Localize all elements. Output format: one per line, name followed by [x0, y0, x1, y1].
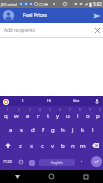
button[interactable]: h [58, 122, 68, 138]
staticText: I [22, 98, 24, 104]
staticText: 2 [18, 108, 20, 112]
button[interactable]: b [58, 138, 68, 153]
button[interactable]: 8 [73, 106, 83, 122]
staticText: c [41, 142, 44, 150]
staticText: z [19, 142, 22, 150]
staticText: 9 [89, 108, 91, 112]
staticText: f [42, 126, 45, 134]
staticText: p [96, 112, 100, 120]
button[interactable]: 1 [0, 106, 11, 122]
button[interactable]: l [88, 122, 98, 138]
button[interactable]: English [39, 159, 75, 166]
button[interactable]: 5 [43, 106, 53, 122]
button[interactable]: 7 [63, 106, 73, 122]
button[interactable]: c [37, 138, 48, 153]
staticText: 7 [69, 108, 71, 112]
button[interactable]: Send [90, 9, 103, 22]
staticText: v [51, 142, 55, 150]
staticText: ?123 [3, 159, 13, 165]
button[interactable]: n [68, 138, 78, 153]
button[interactable]: Enter [90, 155, 103, 168]
button[interactable]: f [38, 122, 48, 138]
staticText: b [61, 142, 65, 150]
staticText: 4 [39, 108, 41, 112]
button[interactable]: d [27, 122, 38, 138]
button[interactable]: Home [45, 170, 58, 183]
staticText: 3 [29, 108, 31, 112]
button[interactable]: Period [77, 153, 85, 170]
staticText: l [92, 126, 94, 134]
button[interactable]: the [63, 96, 90, 106]
button[interactable]: Hi [36, 96, 63, 106]
staticText: 6 [59, 108, 61, 112]
staticText: 1 [7, 108, 9, 112]
staticText: y [56, 112, 60, 120]
staticText: m [80, 142, 86, 150]
button[interactable]: Recents [79, 170, 92, 183]
button[interactable]: a [5, 122, 16, 138]
staticText: Fuel Prices [23, 12, 48, 19]
staticText: k [81, 126, 85, 134]
staticText: a [9, 126, 13, 134]
staticText: 5 [49, 108, 51, 112]
button[interactable]: Close [91, 24, 103, 36]
button[interactable]: Stickers [29, 160, 35, 166]
button[interactable]: Contact avatar [3, 10, 14, 21]
staticText: Add recipients [4, 27, 35, 33]
staticText: q [4, 112, 8, 120]
button[interactable]: 9 [83, 106, 93, 122]
button[interactable]: 4 [33, 106, 43, 122]
staticText: English [51, 160, 63, 165]
staticText: Hi [47, 98, 52, 104]
staticText: i [77, 112, 79, 120]
staticText: g [51, 126, 55, 134]
staticText: o [86, 112, 90, 120]
staticText: r [37, 112, 40, 120]
button[interactable]: I [9, 96, 36, 106]
staticText: h [61, 126, 65, 134]
button[interactable]: 0 [93, 106, 103, 122]
button[interactable]: z [15, 138, 26, 153]
button[interactable]: m [78, 138, 88, 153]
button[interactable]: 2 [11, 106, 22, 122]
button[interactable]: Backspace [88, 138, 103, 153]
button[interactable]: Emoji [16, 153, 25, 170]
button[interactable]: j [68, 122, 78, 138]
staticText: 0 [99, 108, 101, 112]
staticText: 8 [79, 108, 81, 112]
staticText: w [14, 112, 19, 120]
staticText: e [26, 112, 30, 120]
button[interactable]: v [48, 138, 58, 153]
button[interactable]: 6 [53, 106, 63, 122]
button[interactable]: k [78, 122, 88, 138]
button[interactable]: ?123 [0, 153, 15, 170]
button[interactable]: g [48, 122, 58, 138]
staticText: s [20, 126, 23, 134]
staticText: x [30, 142, 34, 150]
staticText: JIO airtel [1, 2, 18, 7]
button[interactable]: x [26, 138, 37, 153]
button[interactable]: Voice input [93, 97, 101, 105]
button[interactable]: Shift [0, 138, 15, 153]
button[interactable]: s [16, 122, 27, 138]
staticText: 5:02 [93, 1, 102, 7]
staticText: the [73, 98, 80, 104]
button[interactable]: Back [11, 170, 24, 183]
button[interactable]: Google [2, 98, 9, 105]
button[interactable]: 3 [22, 106, 33, 122]
staticText: j [72, 126, 74, 134]
staticText: n [71, 142, 75, 150]
staticText: u [66, 112, 70, 120]
staticText: d [31, 126, 35, 134]
staticText: t [47, 112, 50, 120]
button[interactable]: Add recipients [0, 23, 103, 37]
